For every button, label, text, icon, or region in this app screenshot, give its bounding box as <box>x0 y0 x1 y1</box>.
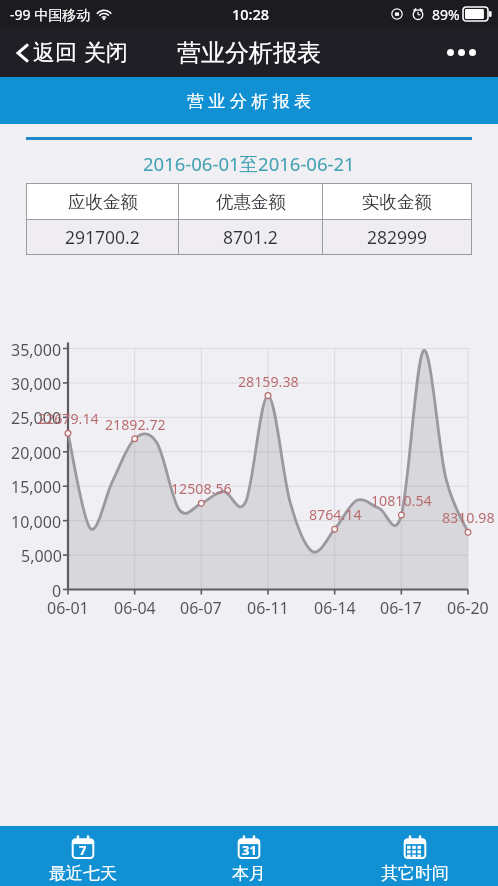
staticText: 营业分析报表 <box>177 38 321 68</box>
staticText: 25,000 <box>11 407 62 429</box>
staticText: 2016-06-01至2016-06-21 <box>143 151 355 176</box>
staticText: 8764.14 <box>309 505 362 524</box>
staticText: 30,000 <box>11 373 62 395</box>
staticText: 06-17 <box>380 597 422 619</box>
staticText: 282999 <box>367 225 428 249</box>
staticText: 最近七天 <box>49 863 117 884</box>
staticText: 06-14 <box>314 597 356 619</box>
staticText: 31 <box>242 841 257 859</box>
staticText: 06-04 <box>114 597 156 619</box>
staticText: 35,000 <box>11 339 62 361</box>
staticText: 返回 <box>33 39 77 67</box>
button[interactable]: 7 <box>0 826 166 886</box>
staticText: 89% <box>432 5 460 24</box>
staticText: 20,000 <box>11 442 62 464</box>
staticText: 06-07 <box>180 597 222 619</box>
staticText: 实收金额 <box>362 191 432 213</box>
staticText: 优惠金额 <box>216 191 286 213</box>
staticText: 06-11 <box>247 597 289 619</box>
staticText: 12508.56 <box>171 479 232 498</box>
staticText: 7 <box>79 841 87 859</box>
staticText: 10810.54 <box>371 491 432 510</box>
staticText: 0 <box>52 580 62 602</box>
staticText: 应收金额 <box>68 191 138 213</box>
staticText: 15,000 <box>11 476 62 498</box>
button[interactable]: More options <box>431 35 498 70</box>
staticText: 8310.98 <box>442 508 495 527</box>
staticText: 06-01 <box>47 597 89 619</box>
staticText: 关闭 <box>84 39 128 67</box>
staticText: 本月 <box>232 863 266 884</box>
staticText: 5,000 <box>21 545 62 567</box>
button[interactable]: 其它时间 <box>332 826 498 886</box>
staticText: 291700.2 <box>65 225 140 249</box>
button[interactable]: 31 <box>166 826 332 886</box>
staticText: -99 中国移动 <box>10 5 91 24</box>
staticText: 其它时间 <box>381 863 449 884</box>
staticText: 10:28 <box>232 4 270 24</box>
staticText: 28159.38 <box>238 372 299 391</box>
button[interactable]: 返回 <box>13 31 80 75</box>
staticText: 21892.72 <box>105 415 166 434</box>
staticText: 10,000 <box>11 511 62 533</box>
staticText: 22679.14 <box>38 409 99 428</box>
staticText: 06-20 <box>447 597 489 619</box>
staticText: 营 业 分 析 报 表 <box>187 89 312 112</box>
staticText: 8701.2 <box>223 225 278 249</box>
button[interactable]: 关闭 <box>80 31 132 75</box>
